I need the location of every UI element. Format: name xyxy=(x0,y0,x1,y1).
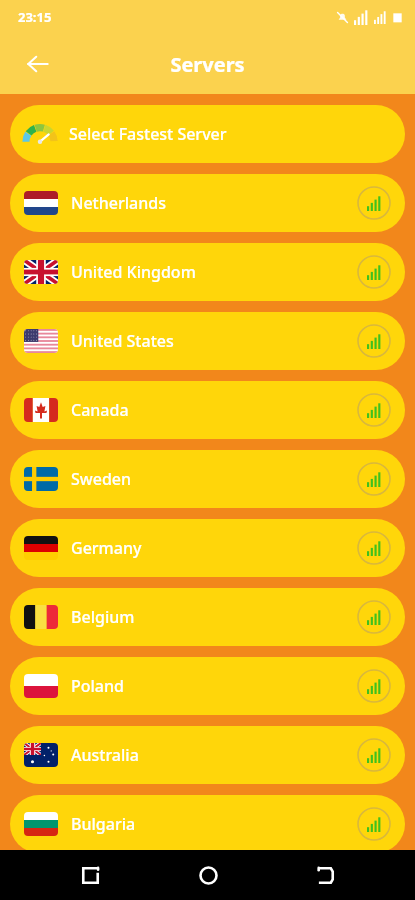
staticText: Servers xyxy=(170,51,245,78)
button[interactable]: Bulgaria xyxy=(10,795,405,853)
button[interactable]: Sweden xyxy=(10,450,405,508)
button[interactable]: United Kingdom xyxy=(10,243,405,301)
button[interactable]: Select Fastest Server xyxy=(10,105,405,163)
staticText: Germany xyxy=(71,537,142,559)
staticText: Belgium xyxy=(71,606,135,628)
button[interactable]: Recent apps xyxy=(62,850,118,900)
button[interactable]: Home xyxy=(180,850,236,900)
staticText: Poland xyxy=(71,675,124,697)
button[interactable]: Belgium xyxy=(10,588,405,646)
button[interactable]: Back xyxy=(16,42,60,86)
staticText: Canada xyxy=(71,399,129,421)
button[interactable]: Poland xyxy=(10,657,405,715)
staticText: United Kingdom xyxy=(71,261,196,283)
button[interactable]: Netherlands xyxy=(10,174,405,232)
button[interactable]: United States xyxy=(10,312,405,370)
button[interactable]: Germany xyxy=(10,519,405,577)
staticText: Sweden xyxy=(71,468,132,490)
button[interactable]: Australia xyxy=(10,726,405,784)
staticText: Bulgaria xyxy=(71,813,136,835)
staticText: Australia xyxy=(71,744,139,766)
staticText: United States xyxy=(71,330,174,352)
staticText: Select Fastest Server xyxy=(69,123,227,145)
button[interactable]: Canada xyxy=(10,381,405,439)
button[interactable]: Back xyxy=(297,850,353,900)
staticText: Netherlands xyxy=(71,192,166,214)
staticText: 23:15 xyxy=(18,8,52,26)
